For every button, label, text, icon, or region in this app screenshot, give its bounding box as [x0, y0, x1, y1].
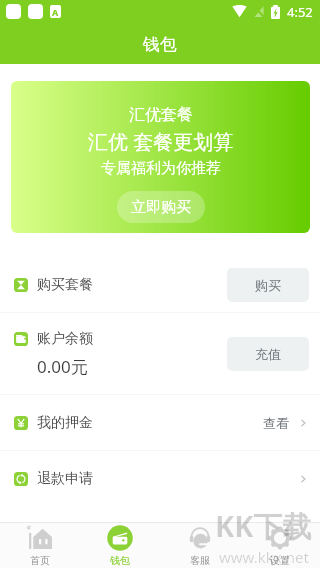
staticText: 设置	[270, 554, 290, 567]
button[interactable]: 购买	[227, 268, 309, 302]
staticText: 汇优套餐	[129, 105, 193, 125]
staticText: 4:52	[287, 3, 313, 21]
other: More	[297, 473, 309, 485]
staticText: 客服	[190, 554, 210, 567]
staticText: 充值	[255, 346, 281, 362]
button[interactable]: 钱包	[80, 523, 160, 568]
button[interactable]: 汇优套餐	[11, 81, 310, 233]
button[interactable]: 设置	[240, 523, 320, 568]
staticText: 购买套餐	[37, 276, 93, 294]
staticText: 0.00元	[37, 355, 88, 378]
staticText: 立即购买	[131, 198, 191, 217]
button[interactable]: 首页	[0, 523, 80, 568]
staticText: 我的押金	[37, 414, 93, 432]
staticText: 首页	[30, 554, 50, 567]
button[interactable]: 购买套餐	[0, 257, 320, 312]
staticText: 钱包	[110, 554, 130, 567]
other: More	[297, 417, 309, 429]
staticText: 退款申请	[37, 470, 93, 488]
staticText: 购买	[255, 277, 281, 293]
button[interactable]: 客服	[160, 523, 240, 568]
staticText: 钱包	[143, 34, 177, 55]
staticText: 查看	[263, 415, 289, 431]
staticText: www.kkx.net	[219, 547, 309, 567]
button[interactable]: 充值	[227, 337, 309, 371]
button[interactable]: 我的押金	[0, 395, 320, 450]
button[interactable]: 立即购买	[117, 191, 205, 223]
staticText: 账户余额	[37, 330, 93, 348]
staticText: 专属福利为你推荐	[101, 159, 221, 178]
button[interactable]: 账户余额	[0, 313, 320, 394]
button[interactable]: 退款申请	[0, 451, 320, 506]
staticText: A	[52, 6, 59, 18]
staticText: KK下载	[215, 506, 312, 546]
staticText: 汇优 套餐更划算	[88, 128, 234, 155]
